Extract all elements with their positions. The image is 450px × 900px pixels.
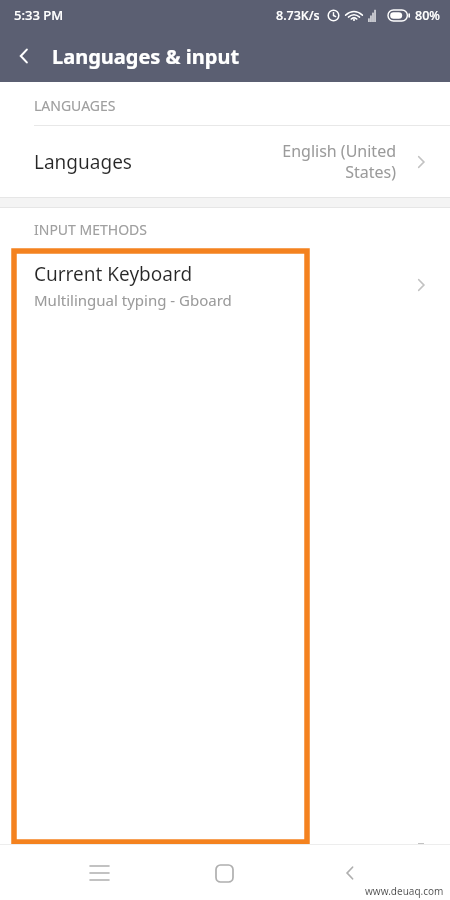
button[interactable]: Back (324, 847, 376, 899)
staticText: 5:33 PM (14, 6, 64, 24)
staticText: Languages & input (52, 43, 240, 70)
staticText: 8.73K/s (276, 7, 320, 24)
button[interactable]: Recent apps (73, 847, 125, 899)
staticText: Current Keyboard (34, 261, 193, 287)
staticText: 80% (415, 7, 440, 24)
staticText: Multilingual typing - Gboard (34, 290, 232, 310)
staticText: INPUT METHODS (34, 220, 147, 239)
button[interactable]: Home (198, 847, 250, 899)
staticText: LANGUAGES (34, 96, 116, 115)
button[interactable]: Current Keyboard (0, 249, 450, 321)
staticText: English (United States) (282, 140, 396, 183)
button[interactable]: Back (0, 32, 48, 80)
staticText: Languages (34, 149, 282, 175)
staticText: www.deuaq.com (365, 884, 444, 898)
button[interactable]: Languages (0, 126, 450, 197)
